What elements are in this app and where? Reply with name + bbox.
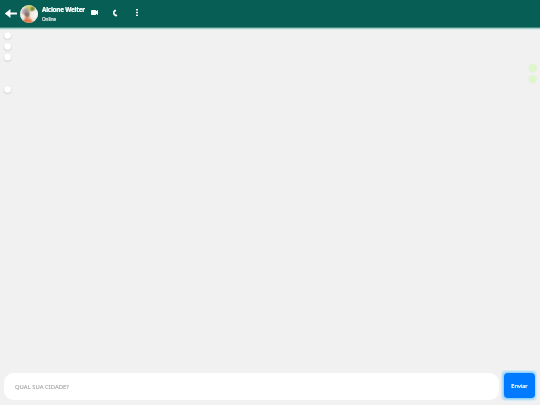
- button[interactable]: QUAL SUA CIDADE?: [4, 373, 499, 400]
- button[interactable]: Call: [108, 5, 123, 20]
- staticText: Alcione Welter: [42, 5, 85, 14]
- button[interactable]: Video call: [87, 5, 102, 20]
- button[interactable]: Profile photo: [20, 5, 38, 23]
- button[interactable]: Back: [4, 4, 18, 22]
- button[interactable]: More options: [129, 5, 144, 20]
- staticText: QUAL SUA CIDADE?: [15, 383, 69, 391]
- button[interactable]: Enviar: [504, 373, 535, 398]
- staticText: Online: [42, 16, 57, 22]
- staticText: Enviar: [511, 382, 528, 390]
